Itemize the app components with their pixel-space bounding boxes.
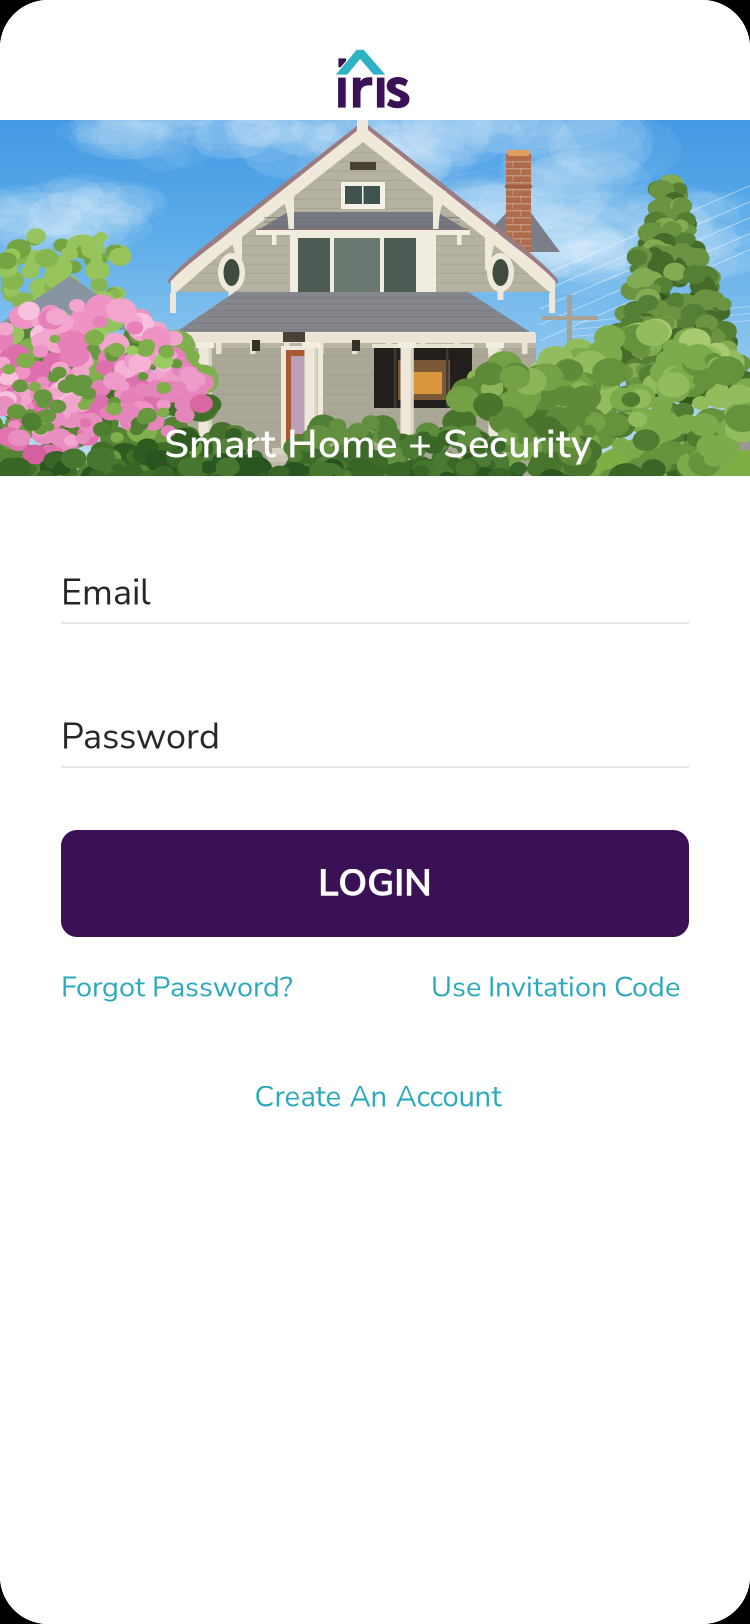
staticText: Use Invitation Code (431, 967, 680, 1007)
staticText: Forgot Password? (61, 967, 293, 1007)
button[interactable]: Create An Account (252, 1079, 504, 1115)
button[interactable]: Use Invitation Code (422, 969, 680, 1005)
staticText: Create An Account (254, 1077, 501, 1117)
button[interactable]: Forgot Password? (61, 969, 301, 1005)
button[interactable]: LOGIN (61, 830, 689, 937)
staticText: Smart Home + Security (164, 417, 592, 472)
staticText: Password (61, 712, 220, 761)
staticText: LOGIN (318, 858, 432, 909)
staticText: Email (61, 568, 151, 617)
